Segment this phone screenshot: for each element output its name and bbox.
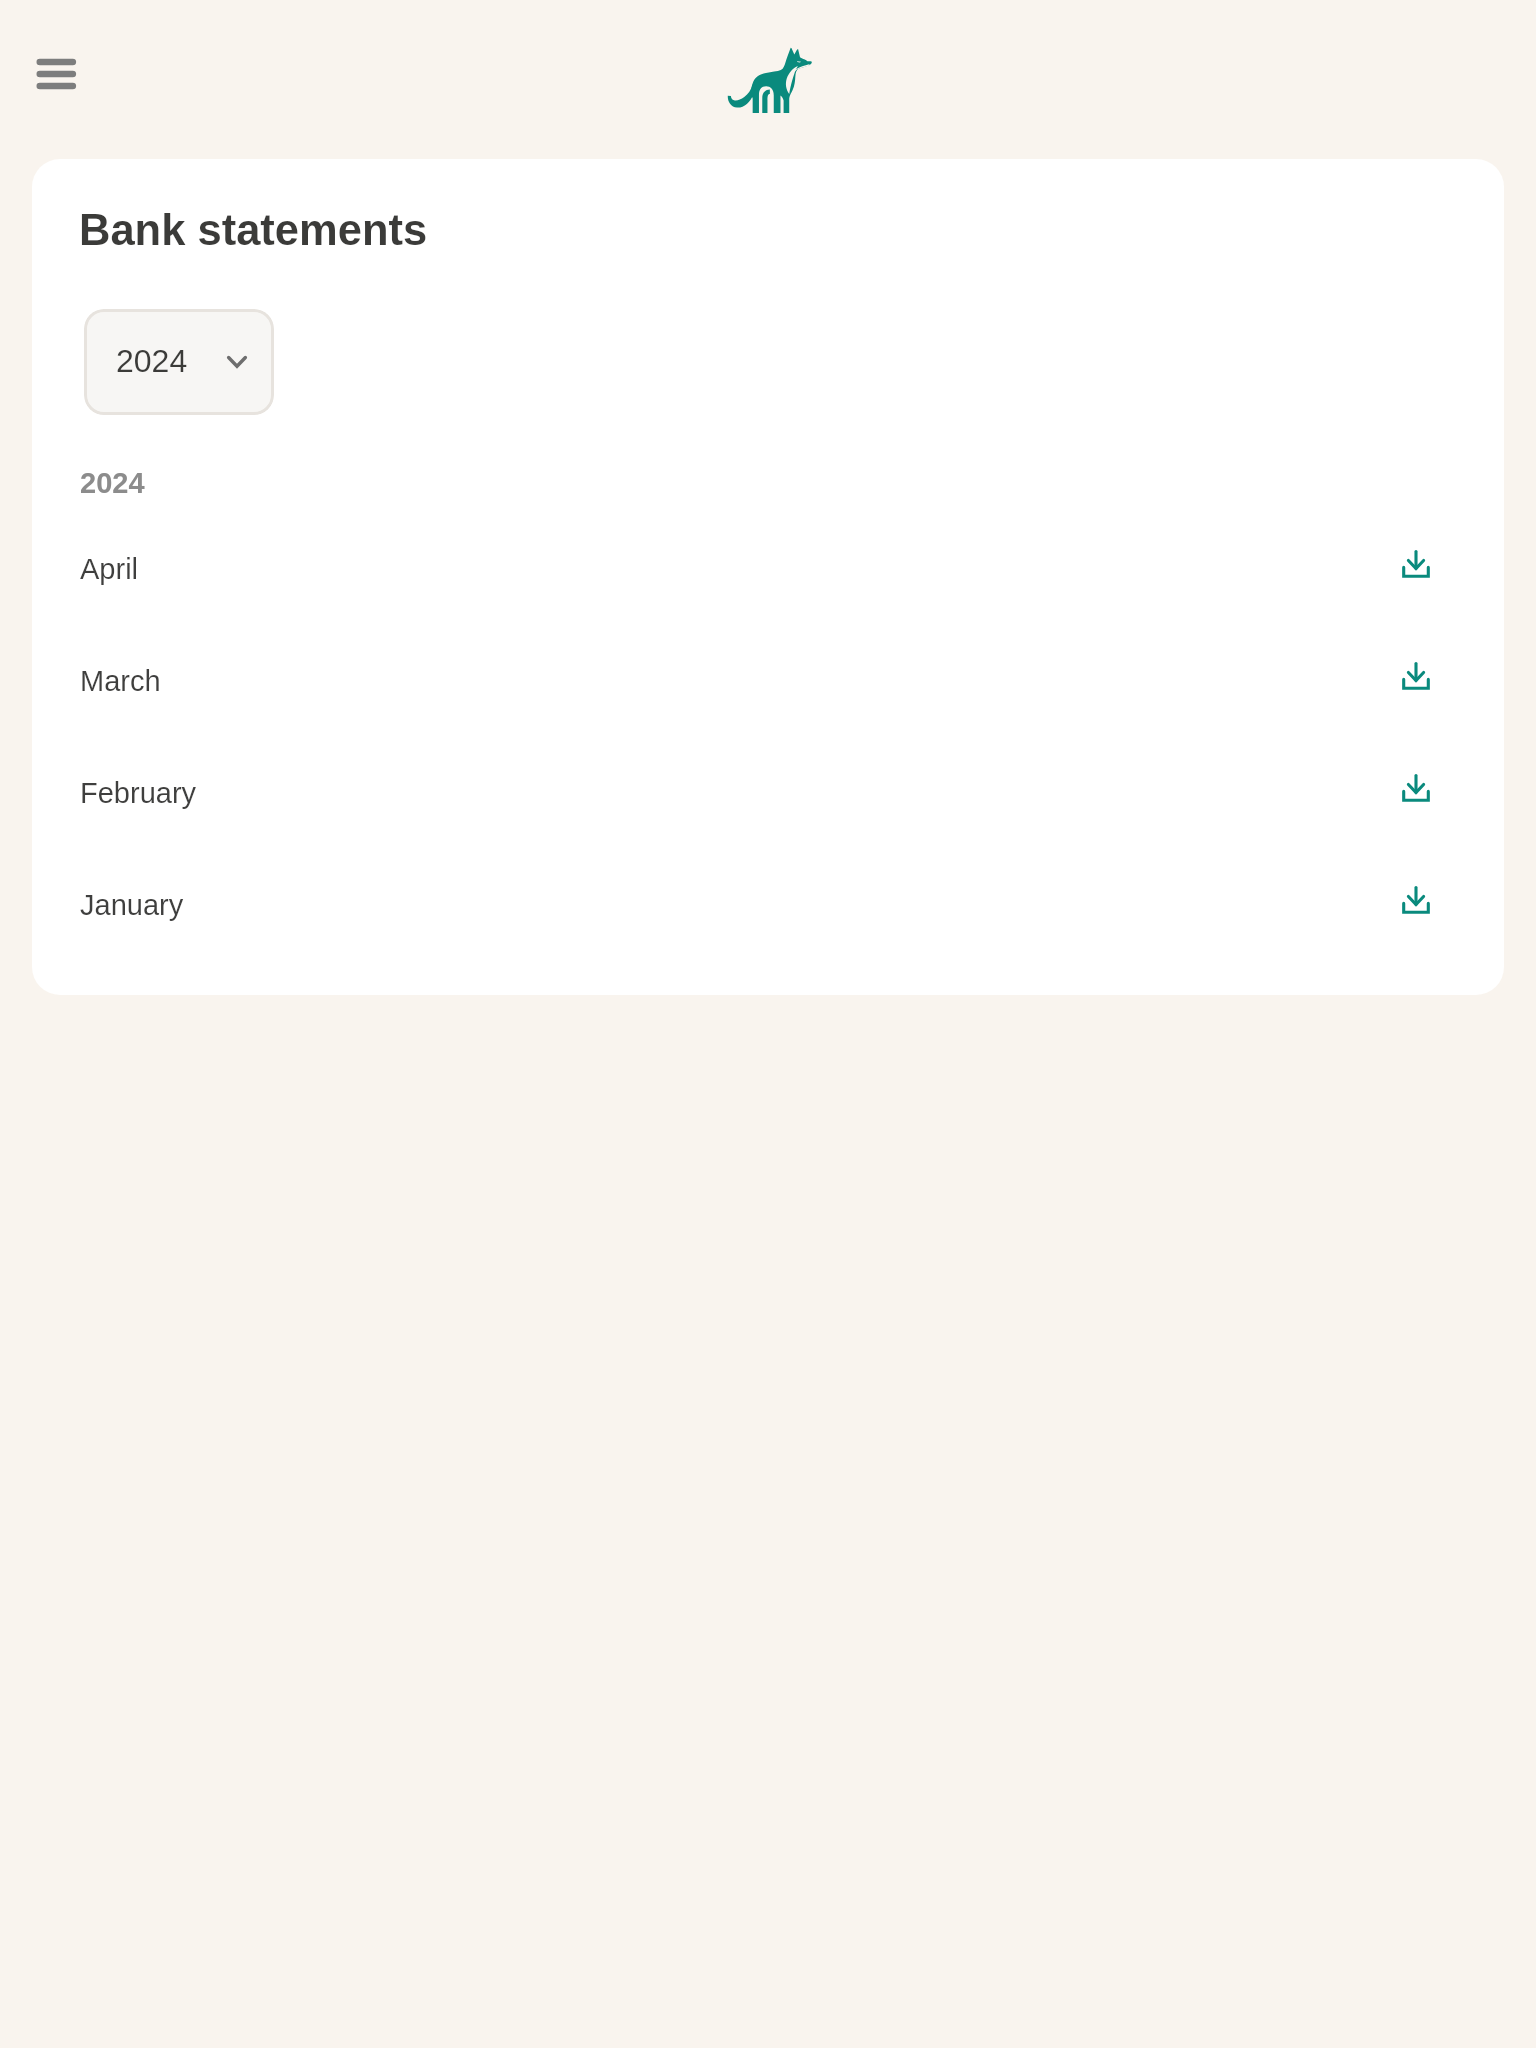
button[interactable]: Open navigation menu: [18, 36, 94, 112]
staticText: Bank statements: [79, 206, 428, 255]
staticText: 2024: [116, 343, 188, 379]
staticText: March: [80, 665, 161, 697]
button[interactable]: March: [32, 625, 1504, 737]
button[interactable]: Download April statement: [1388, 536, 1444, 592]
button[interactable]: 2024: [84, 309, 274, 415]
button[interactable]: January: [32, 849, 1504, 961]
staticText: 2024: [80, 467, 145, 499]
button[interactable]: Download February statement: [1388, 760, 1444, 816]
button[interactable]: February: [32, 737, 1504, 849]
button[interactable]: Download January statement: [1388, 872, 1444, 928]
button[interactable]: April: [32, 513, 1504, 625]
staticText: February: [80, 777, 197, 809]
staticText: April: [80, 553, 139, 585]
staticText: January: [80, 889, 184, 921]
button[interactable]: Download March statement: [1388, 648, 1444, 704]
